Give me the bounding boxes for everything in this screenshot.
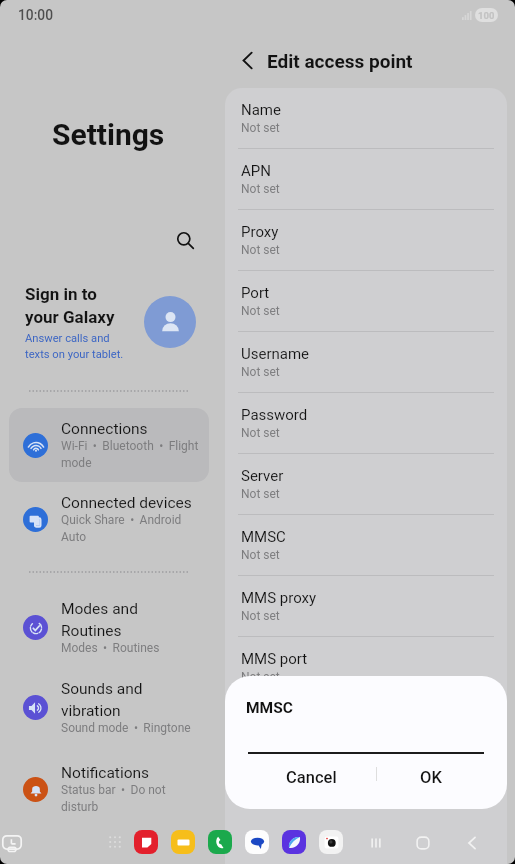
staticText: APN — [241, 162, 271, 180]
button[interactable]: MMSC — [225, 515, 507, 576]
button[interactable]: Server — [225, 454, 507, 515]
button[interactable]: Messages — [245, 830, 269, 854]
staticText: Not set — [241, 365, 280, 379]
button[interactable]: MMS protocol — [225, 698, 507, 759]
staticText: OK — [420, 768, 442, 787]
staticText: 100 — [478, 10, 495, 21]
button[interactable]: Home — [410, 830, 435, 855]
button[interactable]: Modes and Routines — [9, 590, 209, 664]
staticText: Notifications — [61, 764, 150, 782]
staticText: MMSC — [241, 528, 286, 546]
staticText: Sounds and vibration — [61, 680, 143, 720]
staticText: Not set — [241, 426, 280, 440]
button[interactable]: Files — [171, 830, 195, 854]
staticText: Not set — [241, 670, 280, 684]
staticText: Status bar • Do not disturb — [61, 783, 166, 814]
staticText: Settings — [52, 117, 165, 152]
button[interactable]: Sign in to your Galaxy — [16, 278, 209, 368]
staticText: Wi-Fi • Bluetooth • Flight mode — [61, 439, 199, 470]
button[interactable]: Phone — [208, 830, 232, 854]
button[interactable]: OK — [378, 756, 483, 798]
button[interactable]: Password — [225, 393, 507, 454]
staticText: Modes and Routines — [61, 600, 138, 640]
staticText: Not set — [241, 121, 280, 135]
staticText: MMS proxy — [241, 589, 317, 607]
button[interactable]: Camera — [319, 830, 343, 854]
staticText: Edit access point — [267, 50, 413, 72]
staticText: Cancel — [286, 768, 337, 787]
button[interactable]: Back — [230, 43, 264, 77]
staticText: Not set — [241, 243, 280, 257]
button[interactable]: Connected devices — [9, 482, 209, 556]
staticText: Username — [241, 345, 310, 363]
staticText: Sound mode • Ringtone — [61, 721, 191, 735]
button[interactable]: Back — [459, 830, 484, 855]
staticText: Name — [241, 101, 281, 119]
staticText: Not set — [241, 182, 280, 196]
staticText: 10:00 — [18, 7, 54, 23]
staticText: Connected devices — [61, 494, 192, 512]
staticText: Not set — [241, 548, 280, 562]
button[interactable]: MMS proxy — [225, 576, 507, 637]
staticText: Answer calls and texts on your tablet. — [25, 332, 124, 361]
staticText: Proxy — [241, 223, 279, 241]
staticText: Sign in to your Galaxy — [25, 284, 115, 327]
staticText: MMS protocol — [241, 711, 336, 729]
button[interactable]: Connections — [9, 408, 209, 482]
button[interactable]: MMS port — [225, 637, 507, 698]
button[interactable]: Notifications — [9, 752, 209, 826]
staticText: Modes • Routines — [61, 641, 160, 655]
button[interactable]: Name — [225, 88, 507, 149]
button[interactable]: Sounds and vibration — [9, 670, 209, 744]
staticText: Connections — [61, 420, 148, 438]
button[interactable]: Recents — [363, 830, 388, 855]
button[interactable]: Apps — [104, 831, 126, 853]
staticText: Quick Share • Android Auto — [61, 513, 182, 544]
button[interactable]: Cancel — [247, 756, 375, 798]
staticText: Port — [241, 284, 270, 302]
button[interactable]: Search — [167, 222, 204, 259]
staticText: Server — [241, 467, 284, 485]
staticText: Not set — [241, 609, 280, 623]
button[interactable]: APN — [225, 149, 507, 210]
button[interactable]: Notes — [134, 830, 158, 854]
button[interactable]: Proxy — [225, 210, 507, 271]
staticText: Password — [241, 406, 308, 424]
button[interactable]: Clipboard — [0, 832, 24, 854]
staticText: MMS port — [241, 650, 308, 668]
staticText: Not set — [241, 487, 280, 501]
button[interactable]: Port — [225, 271, 507, 332]
staticText: MMSC — [246, 699, 293, 717]
button[interactable]: Internet — [282, 830, 306, 854]
staticText: Not set — [241, 304, 280, 318]
button[interactable]: Username — [225, 332, 507, 393]
